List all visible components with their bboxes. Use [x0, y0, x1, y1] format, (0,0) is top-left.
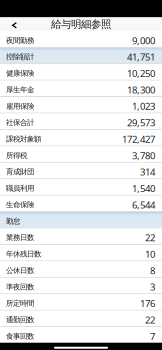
- button[interactable]: 通勤回数: [0, 311, 162, 326]
- staticText: 3: [150, 280, 155, 293]
- button[interactable]: 控除額計: [0, 48, 162, 63]
- button[interactable]: 年休残日数: [0, 245, 162, 260]
- staticText: 3,780: [132, 149, 155, 162]
- staticText: 業務日数: [6, 233, 34, 242]
- staticText: 勤怠: [6, 216, 20, 226]
- button[interactable]: 社保合計: [0, 113, 162, 129]
- staticText: 課税対象額: [6, 134, 41, 144]
- staticText: 厚生年金: [6, 85, 34, 94]
- staticText: 22: [145, 231, 155, 244]
- staticText: 夜間勤務: [6, 36, 34, 45]
- button[interactable]: 業務日数: [0, 228, 162, 244]
- button[interactable]: 勤怠: [0, 212, 162, 228]
- staticText: 314: [140, 165, 155, 178]
- button[interactable]: 健康保険: [0, 64, 162, 80]
- staticText: 給与明細参照: [51, 18, 111, 31]
- staticText: 所定時間: [6, 299, 34, 308]
- staticText: 1,023: [132, 100, 155, 113]
- staticText: 健康保険: [6, 69, 34, 78]
- button[interactable]: 所得税: [0, 146, 162, 162]
- button[interactable]: 課税対象額: [0, 130, 162, 145]
- staticText: 控除額計: [6, 52, 34, 61]
- staticText: 22: [145, 313, 155, 326]
- staticText: 29,573: [127, 116, 155, 129]
- staticText: 雇用保険: [6, 101, 34, 111]
- staticText: 41,751: [127, 50, 155, 63]
- staticText: 18,300: [127, 83, 155, 96]
- staticText: 9,000: [132, 34, 155, 47]
- button[interactable]: 食事回数: [0, 327, 162, 343]
- staticText: 準夜回数: [6, 282, 34, 292]
- staticText: 育成財団: [6, 167, 34, 177]
- staticText: 生命保険: [6, 200, 34, 209]
- staticText: 社保合計: [6, 118, 34, 127]
- button[interactable]: 雇用保険: [0, 97, 162, 113]
- button[interactable]: 職員利用: [0, 179, 162, 195]
- staticText: 10,250: [127, 67, 155, 80]
- button[interactable]: Back: [0, 17, 26, 31]
- staticText: 176: [140, 297, 155, 310]
- staticText: 職員利用: [6, 184, 34, 193]
- staticText: 公休日数: [6, 266, 34, 275]
- staticText: 所得税: [6, 151, 27, 160]
- staticText: 年休残日数: [6, 249, 41, 259]
- button[interactable]: 育成財団: [0, 163, 162, 178]
- button[interactable]: 所定時間: [0, 294, 162, 310]
- staticText: 7: [150, 330, 155, 343]
- staticText: 10: [145, 247, 155, 261]
- staticText: 通勤回数: [6, 315, 34, 324]
- button[interactable]: 夜間勤務: [0, 31, 162, 47]
- button[interactable]: 公休日数: [0, 261, 162, 277]
- staticText: 172,427: [122, 132, 155, 146]
- button[interactable]: 厚生年金: [0, 81, 162, 96]
- staticText: 6,544: [132, 198, 155, 211]
- staticText: 食事回数: [6, 331, 34, 341]
- staticText: 8: [150, 264, 155, 277]
- staticText: 1,540: [132, 182, 155, 195]
- button[interactable]: 生命保険: [0, 196, 162, 211]
- button[interactable]: 準夜回数: [0, 278, 162, 293]
